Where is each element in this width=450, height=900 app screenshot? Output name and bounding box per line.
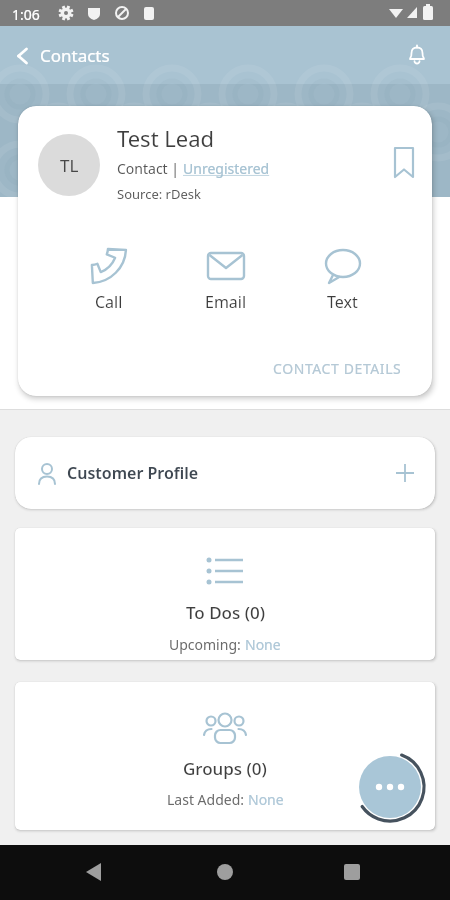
button[interactable]: Text bbox=[284, 245, 401, 313]
staticText: Text bbox=[327, 291, 358, 313]
staticText: None bbox=[248, 790, 284, 809]
staticText: Upcoming: bbox=[169, 635, 245, 654]
button[interactable] bbox=[406, 44, 428, 66]
button[interactable]: CONTACT DETAILS bbox=[273, 359, 402, 378]
button[interactable]: Groups (0) bbox=[15, 682, 435, 830]
button[interactable] bbox=[300, 845, 450, 900]
staticText: Call bbox=[95, 291, 123, 313]
button[interactable] bbox=[393, 146, 415, 180]
staticText: Groups (0) bbox=[183, 757, 267, 780]
button[interactable]: Unregistered bbox=[183, 159, 270, 178]
staticText: None bbox=[245, 635, 281, 654]
staticText: Contact | bbox=[117, 159, 183, 178]
button[interactable]: Email bbox=[167, 245, 284, 313]
staticText: Email bbox=[205, 291, 247, 313]
staticText: 1:06 bbox=[12, 5, 40, 24]
button[interactable]: Customer Profile bbox=[15, 437, 435, 509]
button[interactable]: To Dos (0) bbox=[15, 528, 435, 660]
staticText: To Dos (0) bbox=[186, 601, 265, 624]
button[interactable] bbox=[0, 845, 150, 900]
staticText: Customer Profile bbox=[67, 462, 199, 484]
button[interactable]: Contacts bbox=[14, 44, 110, 67]
button[interactable] bbox=[150, 845, 300, 900]
staticText: Source: rDesk bbox=[117, 185, 201, 203]
button[interactable] bbox=[359, 756, 421, 818]
staticText: Last Added: bbox=[167, 790, 248, 809]
staticText: Test Lead bbox=[117, 123, 215, 153]
button[interactable]: Call bbox=[50, 245, 167, 313]
staticText: TL bbox=[60, 154, 79, 177]
staticText: Contacts bbox=[40, 44, 110, 67]
